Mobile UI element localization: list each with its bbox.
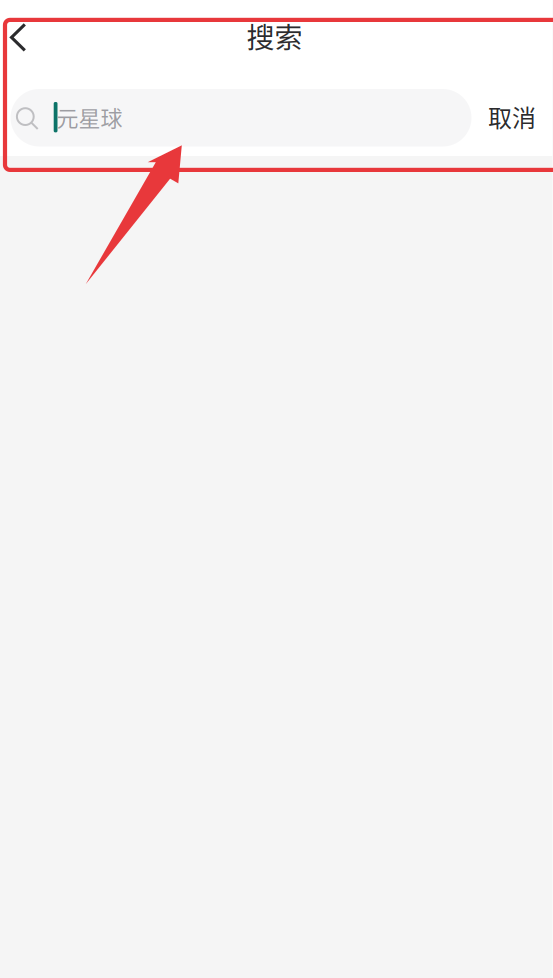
staticText: 元星球 (56, 101, 122, 133)
button[interactable]: Back (1, 12, 58, 64)
button[interactable]: Search 元星球 (10, 89, 471, 146)
button[interactable]: 取消 (479, 88, 545, 145)
staticText: 取消 (488, 99, 536, 134)
staticText: 搜索 (246, 16, 302, 56)
